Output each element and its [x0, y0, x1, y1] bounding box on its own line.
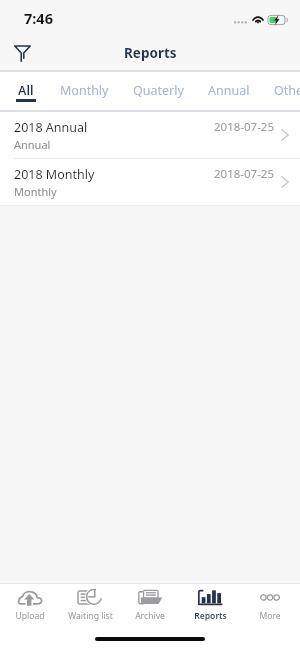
button[interactable]: Archive — [120, 584, 180, 624]
staticText: Quaterly — [133, 82, 184, 99]
button[interactable]: 2018 Annual — [0, 112, 300, 158]
staticText: Upload — [15, 610, 45, 622]
staticText: Annual — [14, 137, 51, 152]
staticText: Monthly — [60, 82, 109, 99]
staticText: 2018 Monthly — [14, 166, 95, 183]
staticText: Monthly — [14, 184, 57, 199]
button[interactable]: Reports — [180, 584, 240, 624]
staticText: More — [259, 610, 281, 622]
staticText: Waiting list — [68, 610, 113, 622]
staticText: 2018 Annual — [14, 119, 88, 136]
staticText: 2018-07-25 — [214, 166, 275, 182]
button[interactable]: More — [240, 584, 300, 624]
staticText: Other — [274, 82, 300, 99]
button[interactable]: Monthly — [48, 72, 121, 110]
staticText: Annual — [208, 82, 250, 99]
button[interactable]: Filter — [5, 36, 39, 70]
staticText: Archive — [135, 610, 165, 622]
button[interactable]: Annual — [196, 72, 262, 110]
button[interactable]: Other — [262, 72, 300, 110]
staticText: Reports — [124, 44, 177, 62]
button[interactable]: 2018 Monthly — [0, 159, 300, 205]
button[interactable]: Upload — [0, 584, 60, 624]
staticText: 2018-07-25 — [214, 119, 275, 135]
staticText: All — [18, 82, 34, 99]
staticText: 7:46 — [24, 8, 53, 28]
button[interactable]: Waiting list — [60, 584, 120, 624]
staticText: Reports — [194, 610, 227, 622]
button[interactable]: Quaterly — [121, 72, 196, 110]
button[interactable]: All — [4, 72, 48, 110]
